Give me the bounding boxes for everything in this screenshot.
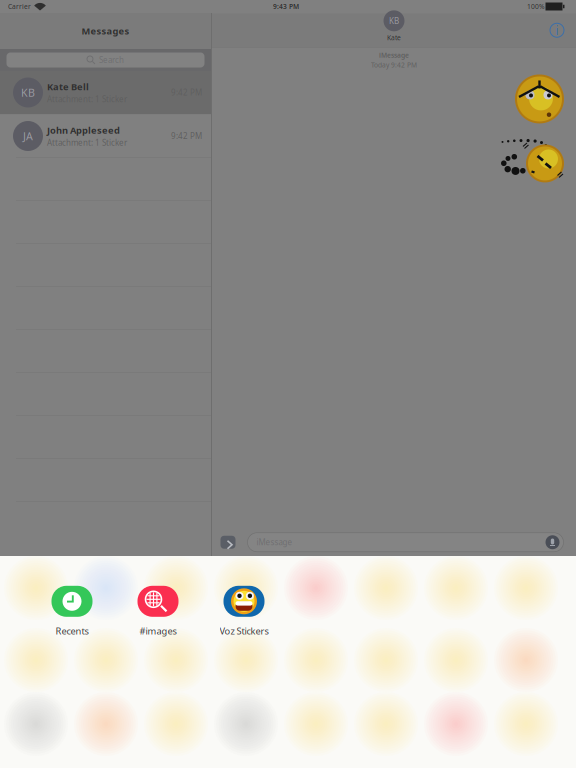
staticText: 9:42 PM: [171, 87, 202, 98]
staticText: i: [555, 22, 558, 38]
staticText: John Appleseed: [47, 124, 120, 136]
button[interactable]: Recents: [29, 588, 115, 643]
button[interactable]: Voz Stickers: [201, 588, 287, 643]
button[interactable]: JA: [0, 114, 211, 157]
staticText: JA: [23, 129, 33, 143]
staticText: KB: [21, 85, 35, 100]
button[interactable]: Details: [550, 23, 564, 37]
staticText: Attachment: 1 Sticker: [47, 94, 127, 104]
button[interactable]: #images: [115, 588, 201, 643]
staticText: Search: [99, 55, 124, 65]
button[interactable]: Apps: [220, 536, 235, 549]
staticText: Kate Bell: [47, 80, 89, 93]
staticText: 100%: [527, 2, 545, 11]
staticText: Attachment: 1 Sticker: [47, 137, 127, 148]
button[interactable]: KB: [0, 71, 211, 114]
staticText: Voz Stickers: [219, 625, 268, 637]
staticText: Today 9:42 PM: [371, 61, 417, 69]
staticText: Kate: [387, 33, 401, 42]
staticText: 9:42 PM: [171, 131, 202, 141]
staticText: KB: [389, 15, 399, 26]
staticText: iMessage: [379, 51, 409, 60]
staticText: 9:43 PM: [273, 2, 299, 11]
staticText: Messages: [81, 25, 129, 37]
staticText: Carrier: [8, 2, 31, 11]
staticText: #images: [139, 625, 176, 637]
staticText: Recents: [55, 625, 88, 637]
staticText: iMessage: [256, 537, 292, 547]
